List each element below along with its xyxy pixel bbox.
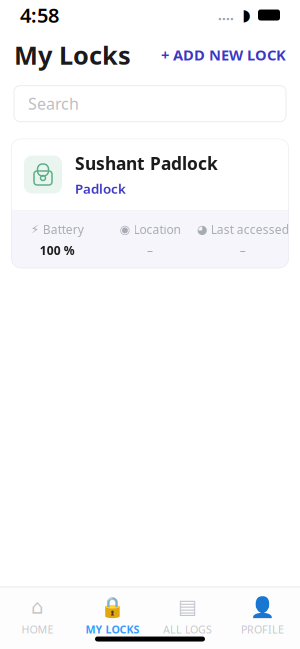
staticText: ◉ bbox=[119, 222, 129, 236]
staticText: PROFILE bbox=[241, 622, 284, 636]
staticText: + ADD NEW LOCK bbox=[161, 45, 286, 65]
staticText: ALL LOGS bbox=[163, 622, 212, 636]
staticText: Last accessed bbox=[211, 221, 289, 237]
button[interactable]: 🔒 bbox=[75, 595, 150, 636]
staticText: Sushant Padlock bbox=[75, 152, 218, 175]
staticText: 4:58 bbox=[20, 2, 59, 28]
staticText: ▤ bbox=[178, 596, 197, 618]
button[interactable]: ▤ bbox=[150, 596, 225, 636]
staticText: .... bbox=[218, 6, 234, 24]
staticText: – bbox=[240, 242, 246, 258]
staticText: Battery bbox=[43, 221, 84, 237]
staticText: Padlock bbox=[75, 180, 126, 197]
button[interactable]: + ADD NEW LOCK bbox=[161, 45, 286, 65]
staticText: 100 % bbox=[40, 242, 75, 258]
staticText: My Locks bbox=[14, 38, 131, 72]
staticText: – bbox=[147, 242, 153, 258]
button[interactable]: 👤 bbox=[225, 595, 300, 636]
staticText: ⌂ bbox=[31, 596, 44, 618]
button[interactable]: ⌂ bbox=[0, 596, 75, 636]
staticText: HOME bbox=[21, 622, 53, 636]
button[interactable]: Sushant Padlock bbox=[11, 139, 289, 268]
staticText: Location bbox=[133, 221, 180, 237]
staticText: 🔒 bbox=[100, 595, 125, 618]
staticText: ⚡︎ bbox=[31, 222, 39, 236]
staticText: ◕ bbox=[197, 222, 207, 236]
staticText: Search bbox=[28, 93, 79, 114]
staticText: ◗ bbox=[242, 6, 250, 24]
button[interactable]: Search bbox=[14, 86, 286, 122]
staticText: 👤 bbox=[250, 595, 275, 618]
staticText: MY LOCKS bbox=[85, 622, 139, 636]
